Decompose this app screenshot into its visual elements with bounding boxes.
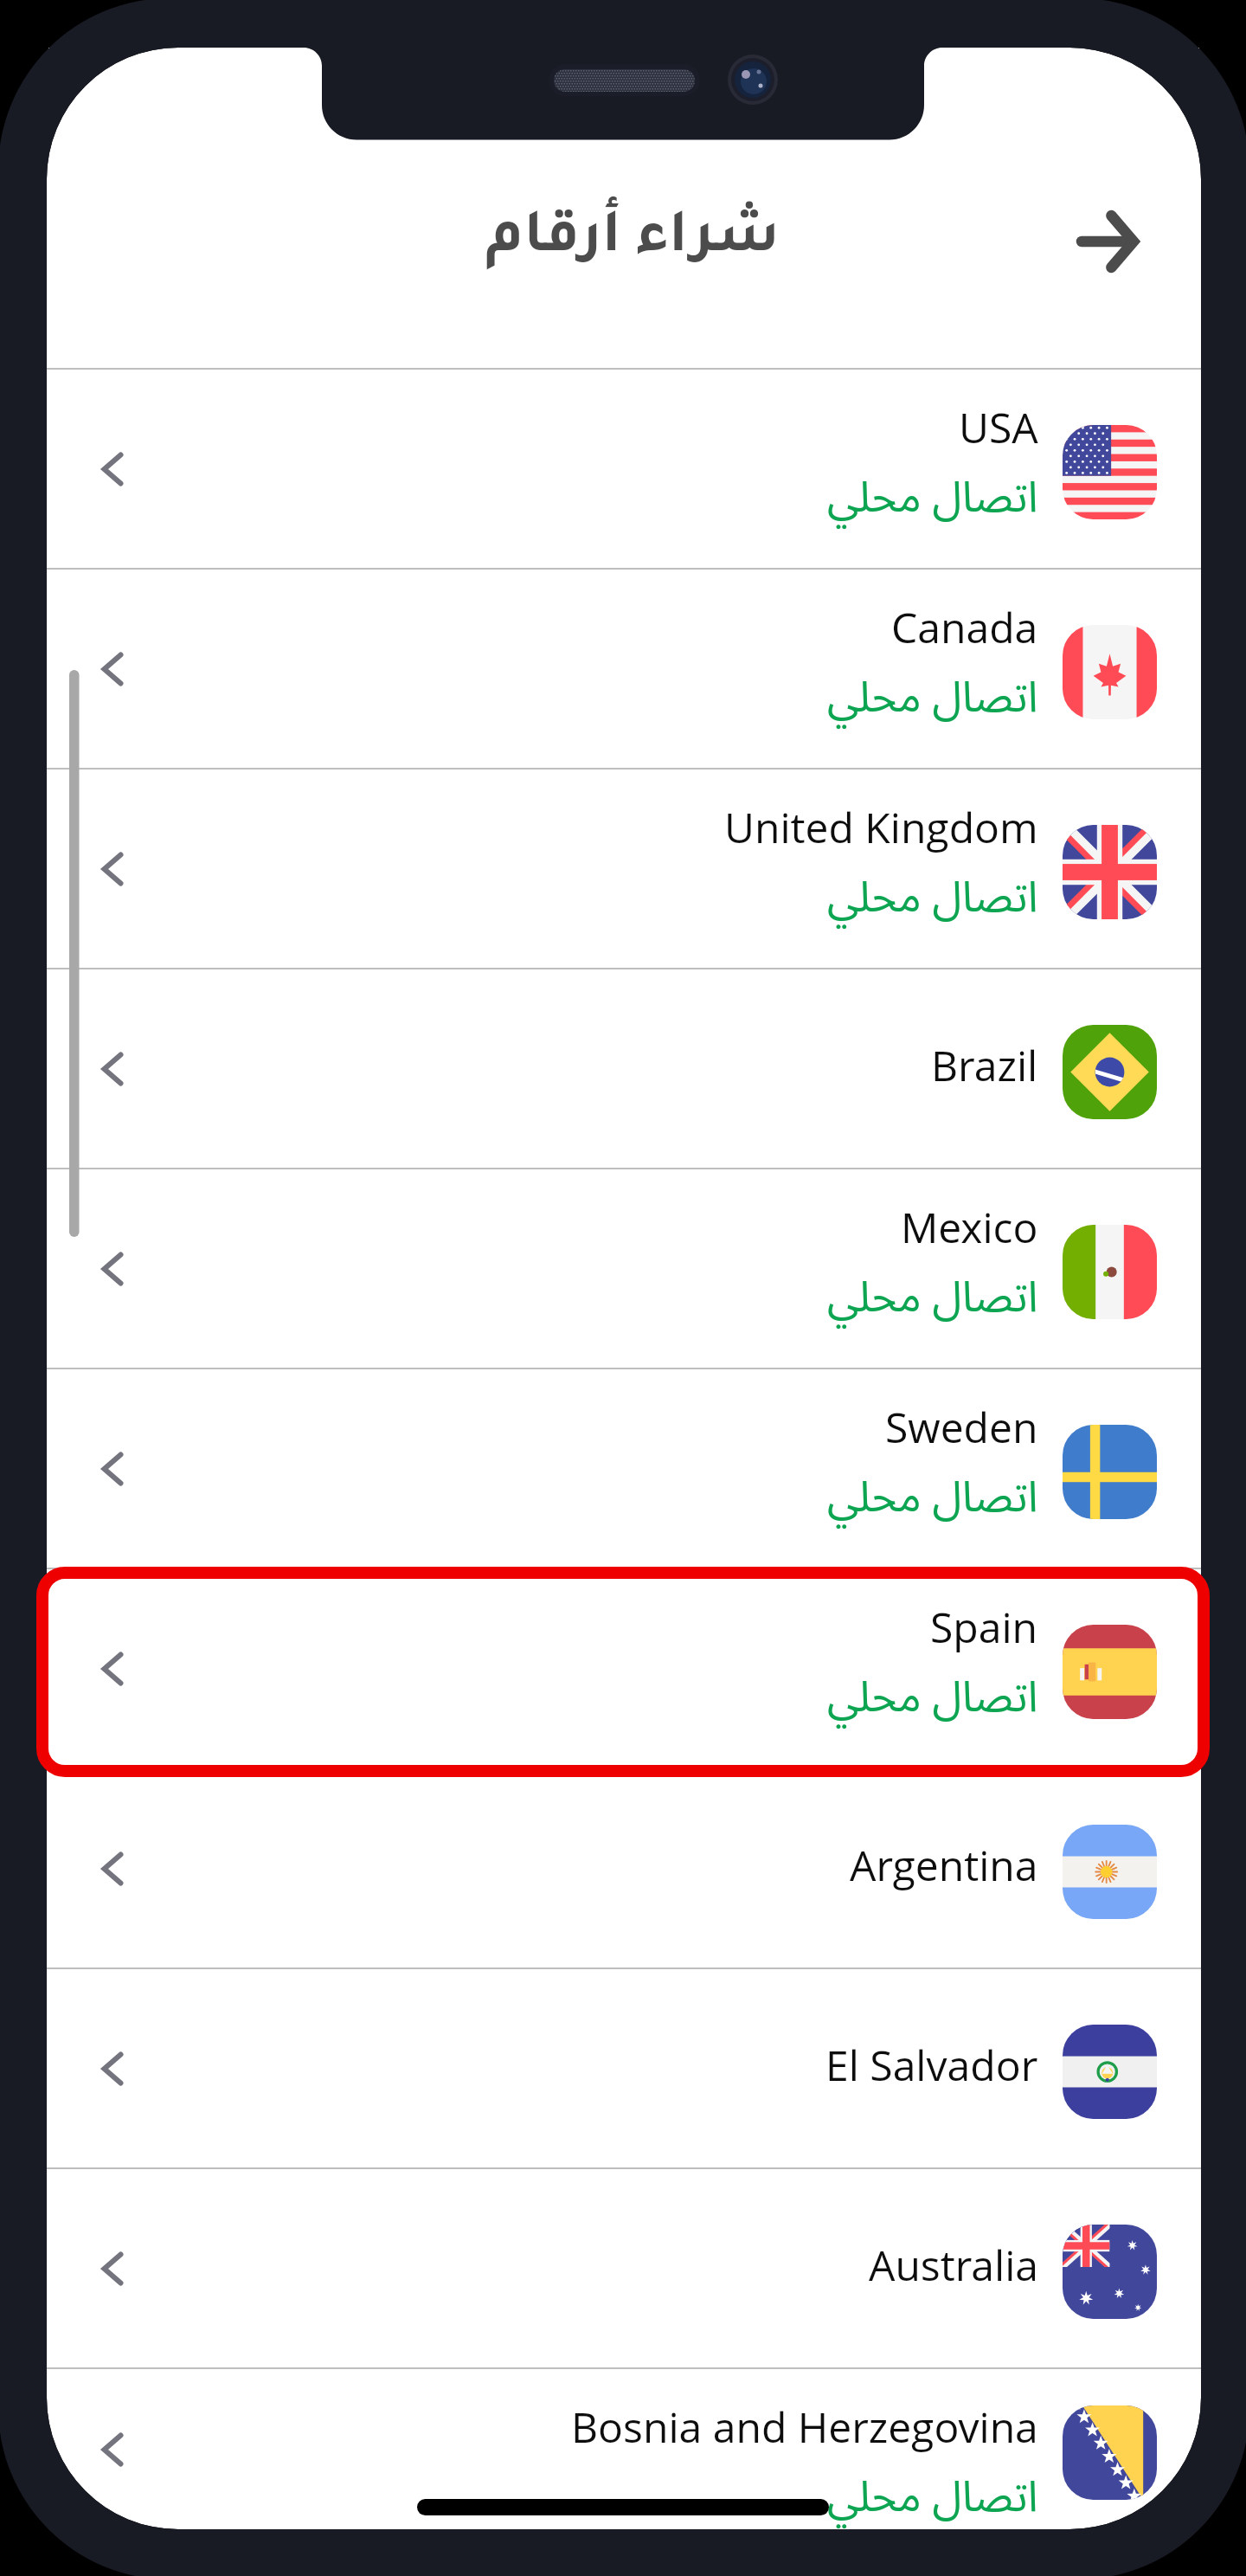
staticText: United Kingdom — [724, 799, 1038, 855]
staticText: USA — [959, 399, 1038, 455]
button[interactable]: Brazil — [47, 969, 1201, 1168]
staticText: اتصال محلي — [827, 1253, 1038, 1343]
button[interactable]: El Salvador — [47, 1969, 1201, 2167]
staticText: اتصال محلي — [827, 1452, 1038, 1542]
staticText: Brazil — [931, 1037, 1038, 1093]
button[interactable]: Australia — [47, 2169, 1201, 2367]
button[interactable]: Sweden — [47, 1369, 1201, 1568]
button[interactable]: Spain — [47, 1569, 1201, 1768]
staticText: El Salvador — [825, 2037, 1038, 2093]
button[interactable]: Mexico — [47, 1169, 1201, 1368]
staticText: اتصال محلي — [827, 853, 1038, 943]
button[interactable]: Argentina — [47, 1769, 1201, 1967]
button[interactable]: United Kingdom — [47, 770, 1201, 968]
button[interactable]: Canada — [47, 570, 1201, 768]
staticText: Bosnia and Herzegovina — [571, 2399, 1038, 2455]
button[interactable]: Bosnia and Herzegovina — [47, 2369, 1201, 2529]
staticText: اتصال محلي — [827, 1652, 1038, 1742]
staticText: شراء أرقام — [485, 210, 780, 272]
button[interactable]: USA — [47, 370, 1201, 568]
staticText: Mexico — [901, 1199, 1038, 1255]
staticText: اتصال محلي — [827, 2452, 1038, 2529]
staticText: اتصال محلي — [827, 453, 1038, 543]
staticText: اتصال محلي — [827, 653, 1038, 743]
staticText: Spain — [930, 1599, 1038, 1655]
staticText: Canada — [891, 599, 1038, 655]
button[interactable]: Continue — [1063, 196, 1154, 287]
staticText: Australia — [869, 2237, 1038, 2293]
staticText: Argentina — [850, 1837, 1038, 1893]
staticText: Sweden — [885, 1399, 1038, 1455]
